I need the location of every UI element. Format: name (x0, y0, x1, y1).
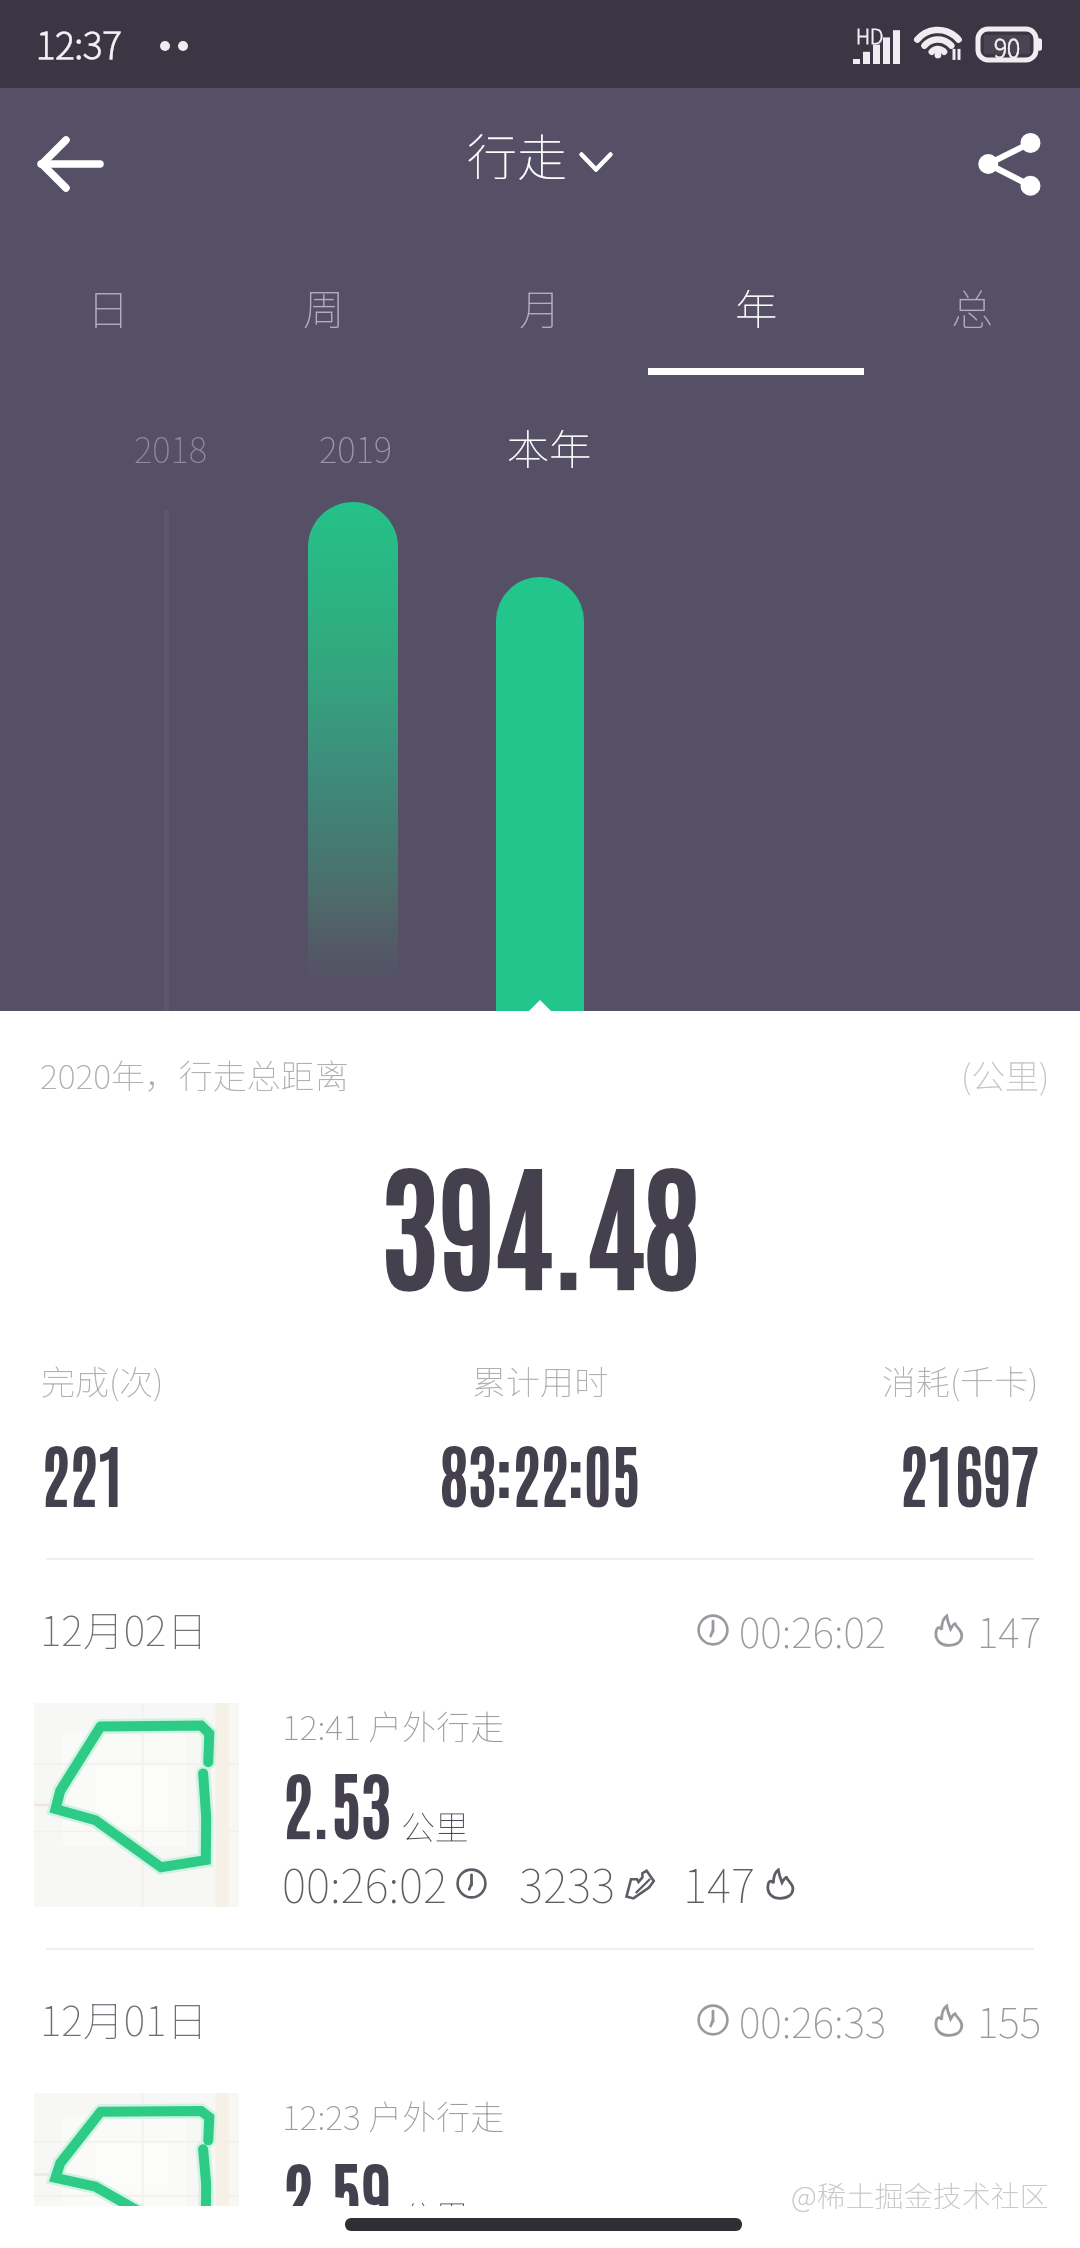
staticText: 公里 (401, 1801, 469, 1850)
staticText: 公里 (401, 2191, 469, 2240)
button[interactable]: 12:41 户外行走 (0, 1695, 1080, 1948)
staticText: 完成(次) (41, 1356, 164, 1405)
staticText: 00:26:33 (739, 1990, 887, 2049)
staticText: 155 (977, 1990, 1042, 2049)
staticText: 年 (735, 276, 778, 337)
button[interactable]: 总 (864, 240, 1080, 382)
staticText: @稀土掘金技术社区 (791, 2173, 1049, 2215)
staticText: 总 (951, 276, 994, 337)
staticText: 12月01日 (40, 1988, 208, 2047)
staticText: 本年 (507, 416, 592, 477)
staticText: HD (856, 21, 884, 50)
staticText: 2020年，行走总距离 (40, 1050, 349, 1099)
staticText: 12:41 户外行走 (282, 1701, 505, 1750)
staticText: 周 (303, 276, 346, 337)
button[interactable]: 年 (648, 240, 864, 382)
staticText: 日 (87, 276, 130, 337)
button[interactable]: 12月02日 (0, 1560, 1080, 1695)
button[interactable]: Back (0, 94, 140, 234)
staticText: 消耗(千卡) (882, 1356, 1039, 1405)
button[interactable]: Share (940, 94, 1080, 234)
button[interactable]: 行走 (467, 118, 613, 190)
staticText: 3233 (519, 1850, 615, 1917)
staticText: 12:23 户外行走 (282, 2091, 505, 2140)
staticText: 2.59 (282, 2145, 391, 2238)
staticText: 394.48 (381, 1131, 700, 1307)
staticText: 2019 (319, 422, 392, 473)
staticText: 2018 (134, 422, 207, 473)
staticText: 累计用时 (472, 1356, 608, 1405)
staticText: 00:26:02 (739, 1600, 887, 1659)
staticText: 月 (519, 276, 562, 337)
staticText: 221 (41, 1429, 125, 1516)
button[interactable]: 月 (432, 240, 648, 382)
staticText: 147 (977, 1600, 1042, 1659)
button[interactable]: 12:23 户外行走 (0, 2085, 1080, 2248)
staticText: 00:26:02 (282, 1850, 448, 1917)
staticText: 2.53 (282, 1755, 391, 1848)
button[interactable]: 日 (0, 240, 216, 382)
staticText: 21697 (899, 1429, 1039, 1516)
staticText: 行走 (467, 118, 567, 190)
staticText: 83:22:05 (440, 1429, 640, 1516)
staticText: 12:37 (36, 16, 122, 70)
button[interactable]: 12月01日 (0, 1950, 1080, 2085)
staticText: 12月02日 (40, 1598, 208, 1657)
staticText: 90 (994, 29, 1021, 60)
button[interactable]: 周 (216, 240, 432, 382)
staticText: 147 (683, 1850, 755, 1917)
staticText: (公里) (961, 1050, 1050, 1099)
